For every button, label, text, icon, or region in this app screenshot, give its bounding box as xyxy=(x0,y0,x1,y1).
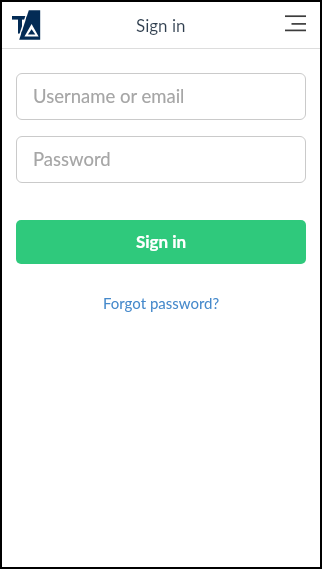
staticText: Sign in xyxy=(136,15,186,35)
staticText: Sign in xyxy=(136,231,187,251)
button[interactable]: Username or email xyxy=(16,73,306,120)
staticText: Username or email xyxy=(33,85,185,107)
staticText: Password xyxy=(33,148,111,170)
button[interactable] xyxy=(285,15,306,32)
button[interactable]: Forgot password? xyxy=(103,294,220,312)
button[interactable]: Sign in xyxy=(16,220,306,264)
button[interactable]: Password xyxy=(16,136,306,183)
